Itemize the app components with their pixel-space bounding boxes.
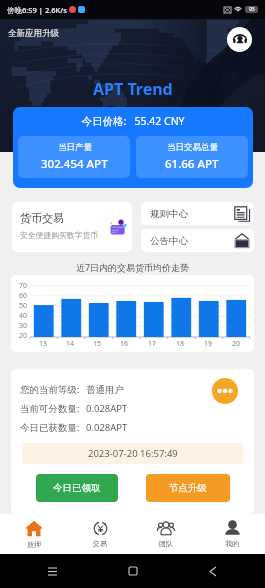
- staticText: 安全便捷购买数字货币: [20, 230, 98, 240]
- button[interactable]: 规则中心: [141, 202, 254, 225]
- button[interactable]: 更多: [212, 378, 238, 404]
- staticText: 您的当前等级:: [20, 383, 80, 396]
- staticText: 95: [249, 6, 255, 13]
- staticText: 今日价格: 55.42 CNY: [13, 114, 253, 128]
- button[interactable]: Recents: [44, 563, 60, 579]
- staticText: 今日已领取: [53, 482, 101, 494]
- button[interactable]: 团队: [133, 514, 199, 554]
- button[interactable]: 我的: [199, 514, 265, 554]
- staticText: 近7日内的交易货币均价走势: [0, 261, 265, 273]
- staticText: 节点升级: [169, 482, 207, 494]
- staticText: 货币交易: [20, 211, 64, 225]
- staticText: 团队: [159, 539, 173, 548]
- staticText: 0.028APT: [86, 421, 128, 434]
- button[interactable]: 质押: [0, 514, 67, 554]
- staticText: 2023-07-20 16:57:49: [88, 447, 178, 460]
- staticText: 公告中心: [150, 235, 188, 247]
- staticText: 17: [148, 339, 157, 349]
- staticText: APT Trend: [93, 78, 173, 100]
- staticText: 质押: [27, 540, 41, 549]
- staticText: 当前可分数量:: [20, 402, 80, 415]
- button[interactable]: 公告中心: [141, 229, 254, 252]
- staticText: 傍晚6:59 | 2.6K/s: [7, 5, 67, 15]
- staticText: 61.66 APT: [165, 156, 219, 172]
- staticText: 14: [66, 339, 75, 349]
- button[interactable]: 货币交易: [12, 202, 132, 252]
- button[interactable]: 交易: [67, 514, 133, 554]
- staticText: 40: [19, 311, 28, 321]
- staticText: 我的: [225, 539, 239, 548]
- staticText: 16: [120, 339, 129, 349]
- button[interactable]: 今日已领取: [36, 474, 118, 502]
- staticText: 50: [19, 301, 28, 311]
- staticText: 普通用户: [86, 384, 124, 396]
- staticText: 70: [19, 281, 28, 291]
- staticText: 30: [19, 321, 28, 331]
- staticText: 0.028APT: [86, 402, 128, 415]
- button[interactable]: 节点升级: [146, 474, 230, 502]
- button[interactable]: 客服: [227, 27, 252, 52]
- staticText: 20: [19, 331, 28, 338]
- button[interactable]: Home: [125, 563, 141, 579]
- staticText: 20: [232, 339, 241, 349]
- staticText: 交易: [93, 539, 107, 548]
- button[interactable]: Back: [205, 563, 221, 579]
- button[interactable]: 当日产量: [18, 136, 130, 178]
- staticText: 13: [39, 339, 48, 349]
- staticText: 302.454 APT: [41, 156, 108, 172]
- staticText: 规则中心: [150, 208, 188, 220]
- staticText: 60: [19, 291, 28, 301]
- staticText: 15: [93, 339, 102, 349]
- staticText: 19: [204, 339, 213, 349]
- staticText: 全新应用升级: [8, 28, 59, 39]
- staticText: 当日交易总量: [167, 142, 218, 153]
- button[interactable]: 当日交易总量: [136, 136, 248, 178]
- staticText: 18: [176, 339, 185, 349]
- staticText: 当日产量: [58, 142, 92, 153]
- staticText: 今日已获数量:: [20, 421, 80, 434]
